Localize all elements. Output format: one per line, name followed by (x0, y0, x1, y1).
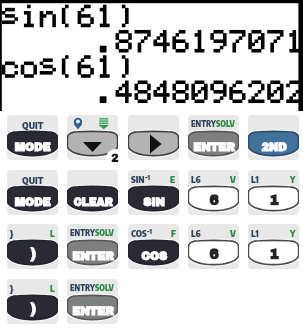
staticText: ENTER (72, 250, 114, 262)
staticText: MODE (14, 196, 51, 208)
staticText: ENTRY (70, 283, 95, 293)
staticText: ) (30, 302, 36, 317)
staticText: SOLVE (95, 283, 115, 293)
staticText: 1 (269, 247, 279, 262)
button[interactable]: ) (7, 224, 58, 269)
staticText: Y (290, 228, 296, 239)
staticText: E (170, 174, 176, 185)
staticText: L1 (251, 228, 259, 239)
button[interactable]: ENTER (188, 115, 239, 160)
staticText: 6 (209, 193, 219, 208)
staticText: 1 (269, 193, 279, 208)
staticText: L (50, 228, 55, 239)
staticText: V (230, 228, 236, 239)
button[interactable]: ENTER (67, 279, 118, 324)
staticText: SOLVE (216, 119, 236, 129)
staticText: SOLVE (95, 228, 115, 238)
staticText: -1 (147, 227, 153, 236)
staticText: L1 (251, 174, 259, 185)
staticText: COS (141, 250, 167, 262)
staticText: ) (30, 247, 36, 262)
staticText: SIN (143, 196, 165, 208)
staticText: SIN (131, 174, 145, 185)
staticText: Y (290, 174, 296, 185)
staticText: 2 (111, 152, 119, 164)
staticText: L (50, 283, 55, 294)
button[interactable]: ENTER (67, 224, 118, 269)
button[interactable]: ) (7, 279, 58, 324)
button[interactable]: COS (128, 224, 179, 269)
staticText: CLEAR (73, 197, 113, 208)
staticText: ENTRY (191, 119, 216, 129)
staticText: QUIT (22, 119, 44, 131)
staticText: F (171, 228, 176, 239)
button[interactable]: 1 (248, 170, 299, 215)
staticText: L6 (191, 228, 201, 239)
button[interactable]: 1 (248, 224, 299, 269)
staticText: } (10, 228, 14, 239)
button[interactable]: 2ND (248, 115, 299, 160)
staticText: 6 (209, 247, 219, 262)
staticText: -1 (145, 173, 151, 182)
staticText: COS (131, 228, 147, 239)
staticText: L6 (191, 174, 201, 185)
button[interactable]: 6 (188, 224, 239, 269)
staticText: ENTER (193, 141, 235, 153)
button[interactable]: SIN (128, 170, 179, 215)
button[interactable]: MODE (7, 115, 58, 160)
staticText: } (10, 283, 14, 294)
staticText: 2ND (261, 141, 287, 153)
button[interactable]: MODE (7, 170, 58, 215)
staticText: QUIT (22, 174, 44, 186)
staticText: ENTER (72, 305, 114, 317)
button[interactable]: Scroll right (128, 115, 179, 160)
button[interactable]: Scroll down (67, 115, 118, 160)
button[interactable]: 6 (188, 170, 239, 215)
staticText: ENTRY (70, 228, 95, 238)
button[interactable]: CLEAR (67, 170, 118, 215)
staticText: MODE (14, 141, 51, 153)
staticText: V (230, 174, 236, 185)
